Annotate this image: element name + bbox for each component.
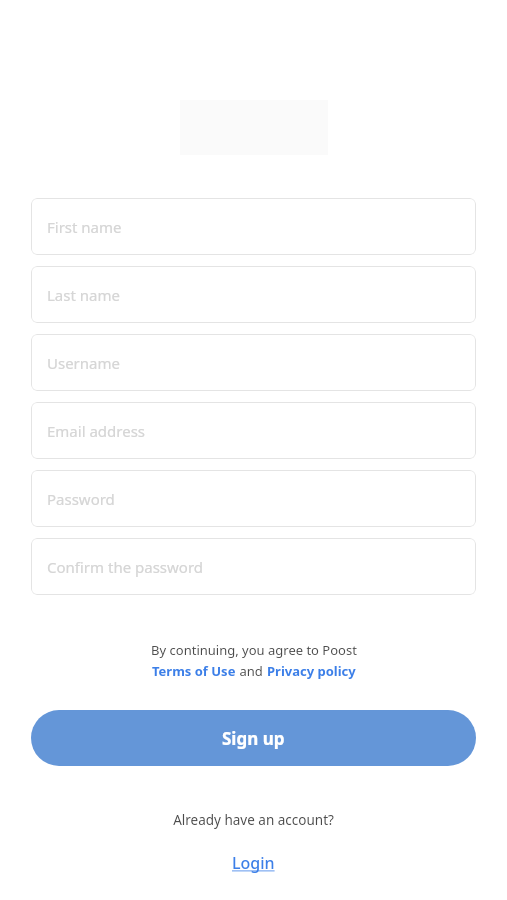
button[interactable]: Terms of Use [152,662,236,680]
staticText: Sign up [222,727,285,750]
staticText: First name [47,217,122,237]
button[interactable]: Sign up [31,710,476,766]
staticText: Username [47,353,120,373]
staticText: Email address [47,421,146,441]
button[interactable]: Username [31,334,476,391]
staticText: Privacy policy [267,662,356,680]
staticText: Password [47,489,115,509]
button[interactable]: Email address [31,402,476,459]
staticText: Confirm the password [47,557,204,577]
staticText: Already have an account? [173,811,334,829]
button[interactable]: First name [31,198,476,255]
button[interactable]: Last name [31,266,476,323]
staticText: Terms of Use [152,662,236,680]
staticText: and [236,662,267,680]
button[interactable]: Confirm the password [31,538,476,595]
staticText: By continuing, you agree to Poost [151,641,357,659]
button[interactable]: Privacy policy [267,662,356,680]
staticText: Login [232,852,275,874]
staticText: Last name [47,285,120,305]
button[interactable]: Login [224,850,283,876]
button[interactable]: Password [31,470,476,527]
